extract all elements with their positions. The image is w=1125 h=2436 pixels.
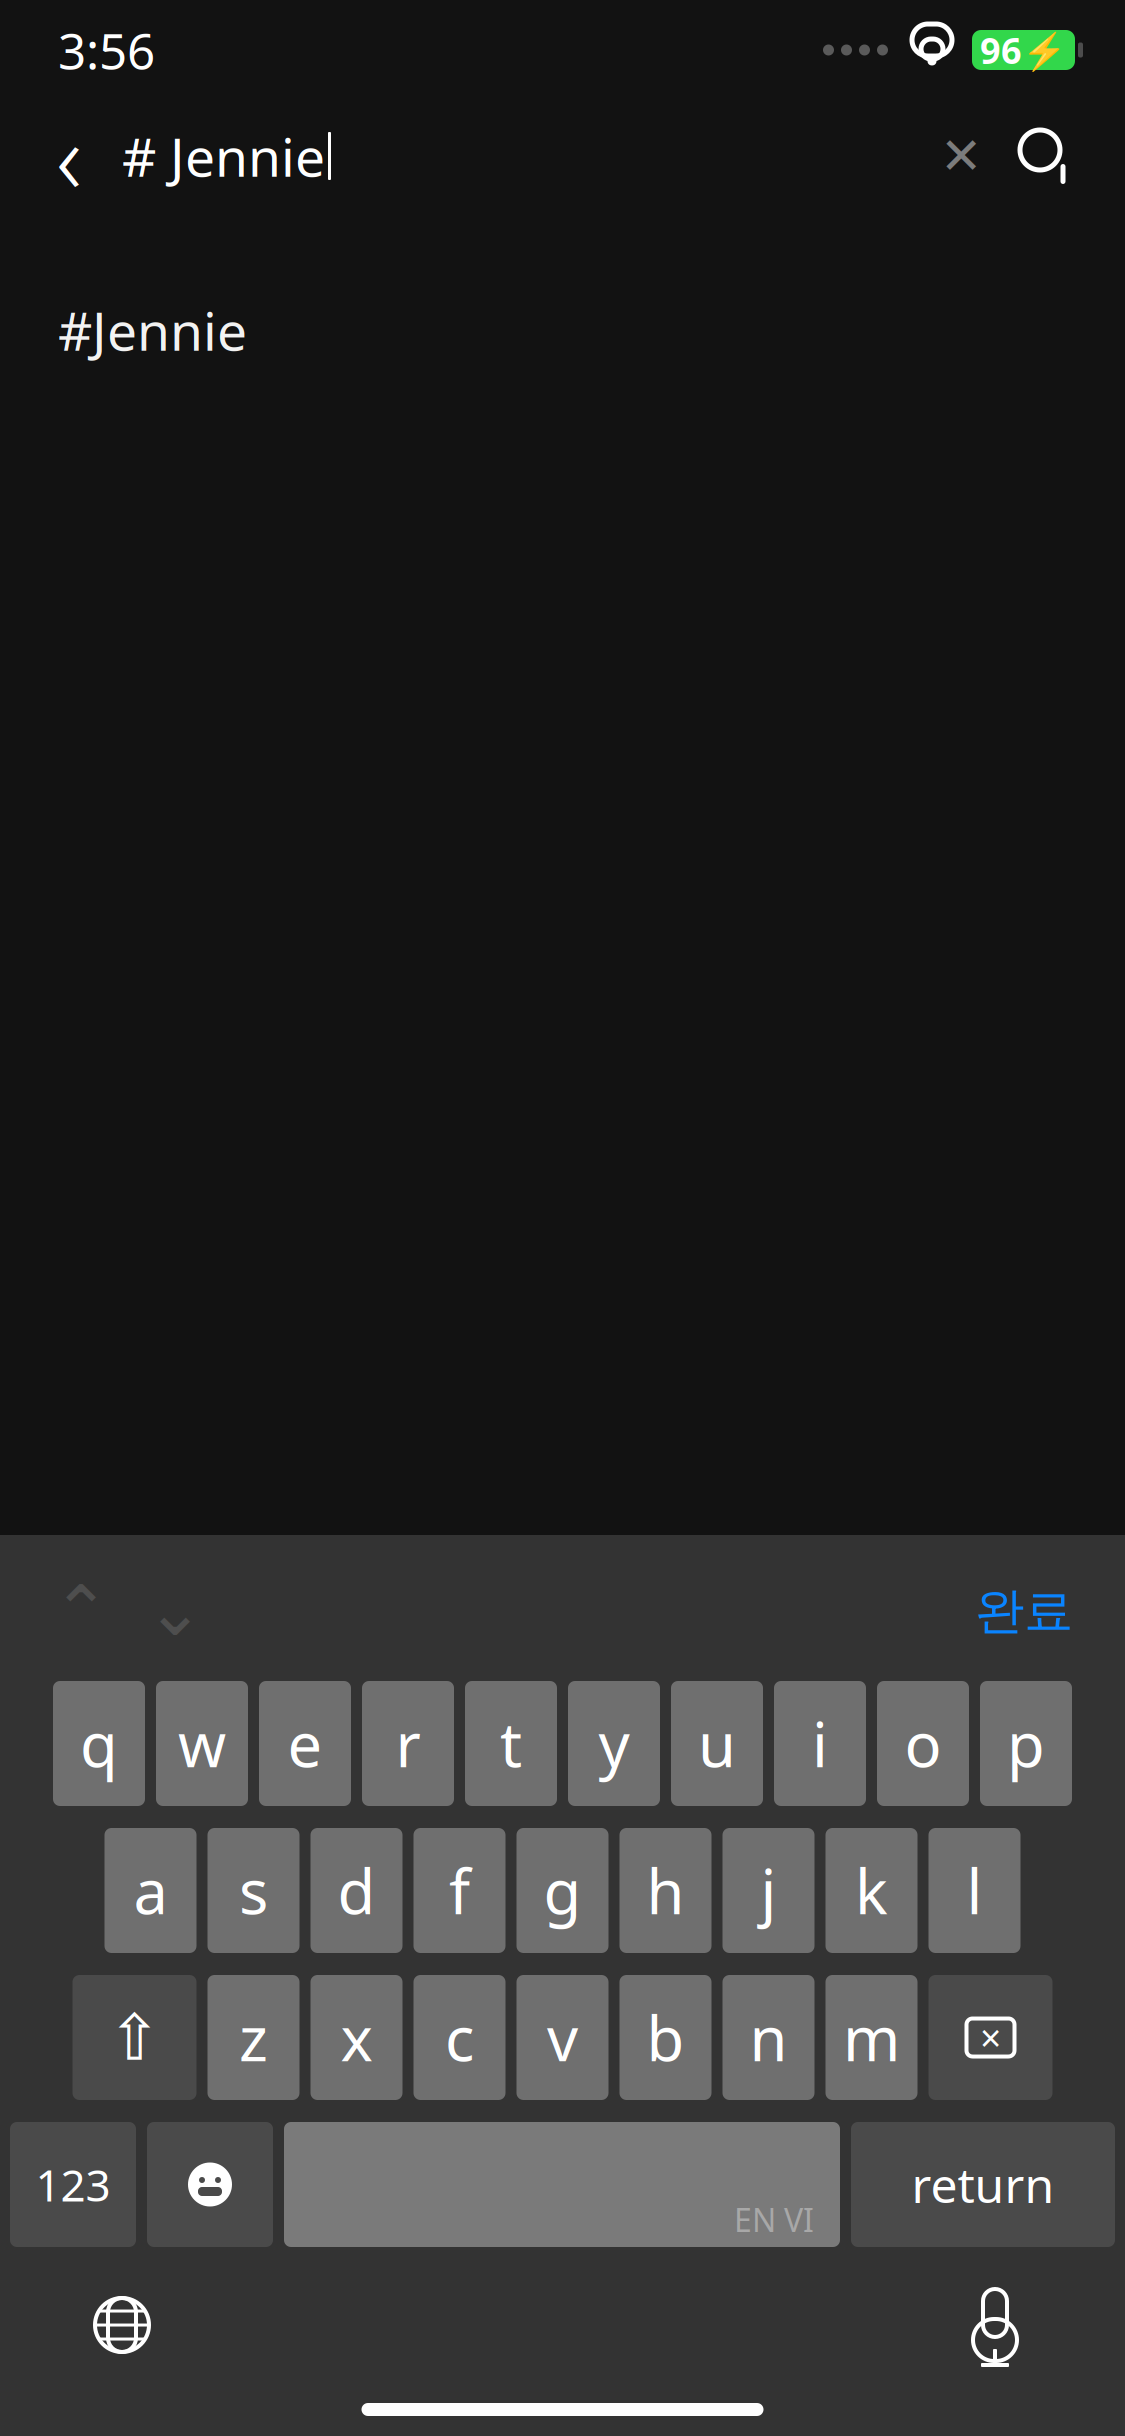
button[interactable]: Next field [128,1564,222,1658]
button[interactable]: z [207,1975,299,2100]
button[interactable]: c [413,1975,505,2100]
staticText: EN VI [734,2198,814,2241]
button[interactable]: f [413,1828,505,1953]
staticText: p [1007,1703,1045,1784]
button[interactable]: q [53,1681,145,1806]
staticText: v [547,1997,578,2078]
staticText: ✕ [940,127,982,185]
button[interactable]: Backspace [928,1975,1052,2100]
staticText: k [855,1850,888,1931]
button[interactable]: v [516,1975,608,2100]
button[interactable]: w [156,1681,248,1806]
button[interactable]: n [722,1975,814,2100]
staticText: q [80,1703,118,1784]
button[interactable]: h [619,1828,711,1953]
staticText: 3:56 [58,17,155,83]
button[interactable]: return [851,2122,1115,2247]
staticText: 완료 [975,1581,1073,1641]
staticText: m [843,1997,900,2078]
button[interactable]: d [310,1828,402,1953]
button[interactable]: 123 [10,2122,136,2247]
staticText: f [449,1850,470,1931]
staticText: b [646,1997,684,2078]
button[interactable]: y [568,1681,660,1806]
button[interactable]: Search [1001,111,1091,201]
button[interactable]: p [980,1681,1072,1806]
button[interactable]: Back [26,113,112,199]
staticText: ⌄ [146,1572,204,1650]
button[interactable]: i [774,1681,866,1806]
button[interactable]: j [722,1828,814,1953]
button[interactable]: #Jennie [0,282,1125,378]
staticText: d [337,1850,375,1931]
staticText: r [395,1703,420,1784]
button[interactable]: x [310,1975,402,2100]
button[interactable]: 완료 [965,1569,1083,1653]
staticText: a [133,1850,167,1931]
staticText: × [980,2013,1001,2062]
button[interactable]: o [877,1681,969,1806]
button[interactable]: Dictation [939,2269,1051,2381]
button[interactable]: t [465,1681,557,1806]
button[interactable]: Space [284,2122,840,2247]
staticText: return [911,2153,1054,2216]
staticText: z [239,1997,268,2078]
button[interactable]: u [671,1681,763,1806]
staticText: 96⚡ [980,26,1067,74]
staticText: i [812,1703,828,1784]
button[interactable]: k [825,1828,917,1953]
staticText: x [340,1997,372,2078]
staticText: g [543,1850,581,1931]
button[interactable]: m [825,1975,917,2100]
button[interactable]: e [259,1681,351,1806]
staticText: u [698,1703,736,1784]
staticText: c [445,1997,474,2078]
staticText: t [500,1703,522,1784]
staticText: 123 [35,2155,110,2214]
staticText: y [598,1703,629,1784]
button[interactable]: g [516,1828,608,1953]
button[interactable]: r [362,1681,454,1806]
button[interactable]: Shift [72,1975,196,2100]
staticText: h [646,1850,684,1931]
button[interactable]: Clear text [921,116,1001,196]
staticText: ⌃ [52,1572,110,1650]
staticText: w [178,1703,226,1784]
staticText: ⇧ [107,2001,161,2074]
button[interactable]: Switch keyboard [66,2269,178,2381]
button[interactable]: Emoji [147,2122,273,2247]
button[interactable]: s [207,1828,299,1953]
button[interactable]: l [928,1828,1020,1953]
staticText: l [966,1850,982,1931]
staticText: j [760,1850,776,1931]
button[interactable]: a [104,1828,196,1953]
button[interactable]: Previous field [34,1564,128,1658]
staticText: o [904,1703,941,1784]
staticText: n [749,1997,787,2078]
staticText: # Jennie [122,121,325,191]
staticText: e [287,1703,322,1784]
button[interactable]: b [619,1975,711,2100]
staticText: ‹ [56,90,82,221]
staticText: #Jennie [58,295,247,365]
staticText: s [239,1850,268,1931]
